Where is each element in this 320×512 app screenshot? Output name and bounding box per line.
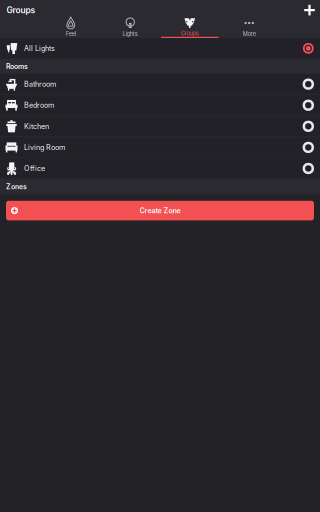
staticText: Rooms xyxy=(6,62,28,71)
button[interactable]: Create Zone xyxy=(6,201,314,220)
button[interactable]: All Lights xyxy=(0,38,320,59)
button[interactable]: Lights xyxy=(100,15,160,38)
staticText: Bathroom xyxy=(24,80,56,88)
staticText: All Lights xyxy=(24,44,55,53)
staticText: Office xyxy=(24,164,45,173)
staticText: Create Zone xyxy=(139,206,180,215)
staticText: Feel xyxy=(66,31,76,37)
staticText: Kitchen xyxy=(24,122,49,131)
staticText: Groups xyxy=(181,30,199,37)
button[interactable]: Bedroom xyxy=(0,95,320,116)
staticText: Zones xyxy=(6,183,27,191)
button[interactable]: Bathroom xyxy=(0,74,320,95)
button[interactable]: Groups xyxy=(160,15,219,38)
button[interactable]: Feel xyxy=(41,15,100,38)
button[interactable]: More xyxy=(219,15,279,38)
button[interactable]: Add group xyxy=(299,3,320,18)
staticText: Lights xyxy=(123,31,138,37)
staticText: Groups xyxy=(6,5,35,15)
button[interactable]: Office xyxy=(0,158,320,179)
staticText: Living Room xyxy=(24,143,65,152)
button[interactable]: Kitchen xyxy=(0,116,320,137)
staticText: More xyxy=(243,31,256,37)
staticText: Bedroom xyxy=(24,101,54,110)
button[interactable]: Living Room xyxy=(0,137,320,158)
